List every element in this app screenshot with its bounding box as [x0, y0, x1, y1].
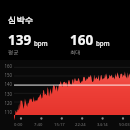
staticText: 최대 — [70, 49, 81, 56]
staticText: 15:17 — [54, 122, 65, 128]
staticText: bpm — [34, 39, 48, 47]
staticText: 22:24 — [75, 122, 86, 128]
staticText: 110 — [0, 109, 12, 115]
staticText: 160 — [0, 63, 12, 69]
button[interactable]: 심박수 — [0, 15, 130, 25]
staticText: 7:40 — [34, 122, 43, 128]
staticText: 139 — [8, 31, 32, 49]
staticText: 심박수 — [8, 15, 33, 25]
button[interactable]: 139 — [8, 31, 70, 56]
staticText: 120 — [0, 100, 12, 106]
staticText: 34:14 — [97, 122, 108, 128]
staticText: bpm — [96, 39, 110, 47]
staticText: 140 — [0, 81, 12, 87]
button[interactable]: 160 — [70, 31, 130, 56]
staticText: 0:00 — [14, 122, 23, 128]
staticText: 130 — [0, 91, 12, 97]
staticText: 160 — [70, 31, 94, 49]
staticText: 평균 — [8, 49, 19, 56]
staticText: 150 — [0, 72, 12, 78]
button[interactable]: Heart rate graph — [0, 60, 130, 130]
staticText: 50:03 — [119, 122, 130, 128]
